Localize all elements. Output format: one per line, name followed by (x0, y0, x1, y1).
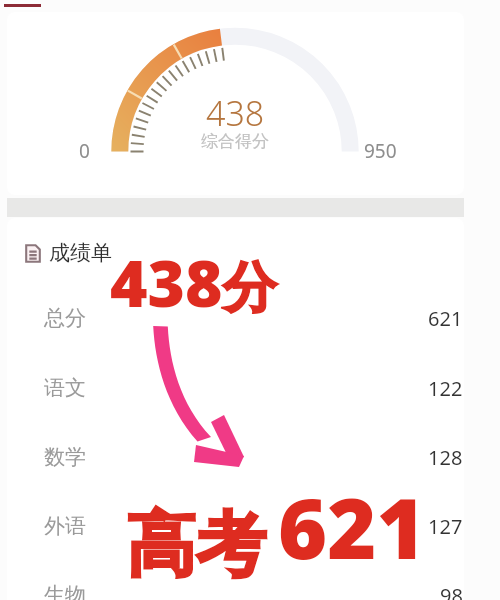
staticText: 122 (428, 375, 463, 402)
staticText: 数学 (44, 444, 86, 470)
staticText: 438 (110, 239, 223, 326)
button[interactable]: 生物 (7, 578, 464, 600)
button[interactable]: 外语 (7, 509, 464, 543)
staticText: 621 (278, 469, 426, 583)
staticText: 分 (223, 254, 277, 322)
button[interactable]: 总分 (7, 301, 464, 335)
staticText: 总分 (44, 305, 86, 331)
staticText: 语文 (44, 375, 86, 401)
staticText: 综合得分 (201, 131, 269, 152)
staticText: 外语 (44, 513, 86, 539)
staticText: 621 (428, 305, 463, 332)
staticText: 生物 (44, 582, 86, 600)
staticText: 成绩单 (49, 240, 112, 266)
staticText: 98 (440, 582, 463, 600)
staticText: 950 (364, 138, 397, 164)
staticText: 127 (428, 513, 463, 540)
staticText: 0 (79, 138, 90, 164)
staticText: 438 (206, 90, 265, 136)
staticText: 高考 (126, 502, 266, 590)
staticText: 128 (428, 444, 463, 471)
button[interactable]: 成绩单 (25, 240, 112, 266)
button[interactable]: 数学 (7, 440, 464, 474)
button[interactable]: 语文 (7, 371, 464, 405)
